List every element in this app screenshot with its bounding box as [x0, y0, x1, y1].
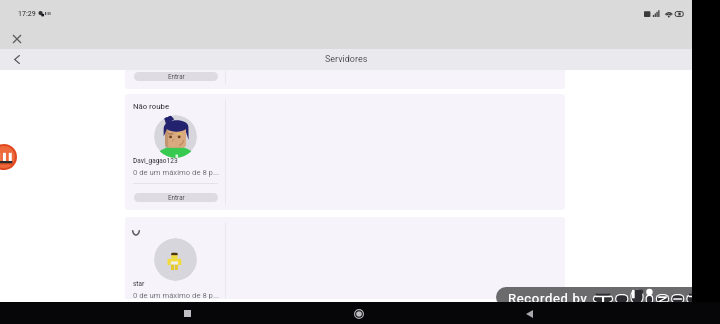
staticText: Servidores: [325, 54, 368, 65]
staticText: star: [133, 280, 145, 288]
button[interactable]: Close: [6, 28, 27, 49]
staticText: 17:29: [18, 10, 36, 18]
button[interactable]: star: [125, 217, 565, 299]
button[interactable]: Entrar: [134, 193, 218, 202]
button[interactable]: Home: [349, 304, 368, 323]
staticText: Davi_gagao123: [133, 157, 178, 165]
button[interactable]: Entrar: [125, 70, 565, 89]
button[interactable]: Recents: [179, 305, 196, 322]
button[interactable]: Entrar: [134, 72, 218, 81]
button[interactable]: Back: [521, 305, 538, 322]
staticText: Entrar: [168, 194, 185, 201]
staticText: 0 de um máximo de 8 p...: [133, 291, 228, 299]
staticText: Não roube: [133, 102, 170, 111]
staticText: 0 de um máximo de 8 p...: [133, 168, 228, 177]
staticText: Entrar: [168, 73, 185, 80]
button[interactable]: Back: [6, 49, 27, 70]
button[interactable]: Não roube: [125, 94, 565, 210]
staticText: Recorded by: [508, 291, 588, 306]
